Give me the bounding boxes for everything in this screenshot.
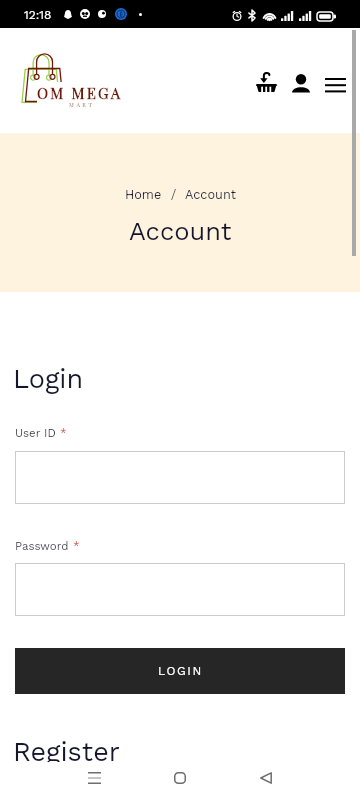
staticText: /	[162, 187, 185, 202]
button[interactable]: Back	[251, 763, 281, 793]
button[interactable]: Cart	[251, 66, 282, 98]
button[interactable]: LOGIN	[15, 648, 345, 694]
staticText: Password	[15, 539, 69, 552]
staticText: *	[56, 426, 67, 439]
button[interactable]: Home	[125, 187, 162, 202]
button[interactable]: Recent apps	[79, 763, 109, 793]
button[interactable]: Account	[287, 67, 315, 99]
button[interactable]: Home	[165, 763, 195, 793]
staticText: 12:18	[24, 8, 52, 22]
staticText: User ID	[15, 426, 56, 439]
staticText: Account	[185, 187, 236, 202]
button[interactable]	[15, 563, 345, 616]
staticText: Register	[13, 736, 120, 768]
button[interactable]	[15, 451, 345, 504]
staticText: Login	[13, 363, 84, 395]
staticText: MART	[69, 101, 95, 108]
button[interactable]: Menu	[320, 69, 350, 101]
staticText: Account	[129, 216, 232, 246]
staticText: LOGIN	[158, 664, 203, 678]
staticText: *	[69, 539, 80, 552]
staticText: OM MEGA	[37, 83, 123, 103]
